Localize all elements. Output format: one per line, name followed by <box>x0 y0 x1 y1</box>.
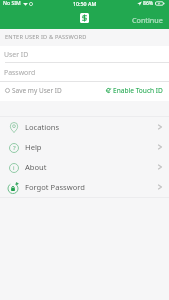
button[interactable]: ? <box>0 137 169 157</box>
staticText: About <box>25 162 47 172</box>
staticText: Locations <box>25 122 60 132</box>
staticText: Save my User ID <box>12 86 62 95</box>
staticText: Enable Touch ID <box>113 86 163 95</box>
staticText: 10:50 AM <box>73 0 97 7</box>
staticText: ENTER USER ID & PASSWORD <box>5 33 87 41</box>
button[interactable]: Enable Touch ID <box>103 83 169 100</box>
button[interactable]: Forgot Password <box>0 177 169 197</box>
button[interactable]: Password <box>0 63 169 81</box>
button[interactable]: User ID <box>0 46 169 62</box>
staticText: i <box>13 164 15 172</box>
staticText: Help <box>25 142 42 152</box>
button[interactable]: Continue <box>126 12 169 28</box>
button[interactable]: Save my User ID <box>0 83 65 100</box>
staticText: Password <box>4 68 36 77</box>
button[interactable]: Locations <box>0 117 169 137</box>
staticText: User ID <box>4 50 29 59</box>
staticText: 86% <box>143 0 154 7</box>
staticText: No SIM <box>3 0 21 7</box>
staticText: Continue <box>132 15 163 25</box>
button[interactable]: App logo <box>80 13 89 23</box>
button[interactable]: i <box>0 157 169 177</box>
staticText: Forgot Password <box>25 182 85 192</box>
staticText: ? <box>13 144 16 152</box>
